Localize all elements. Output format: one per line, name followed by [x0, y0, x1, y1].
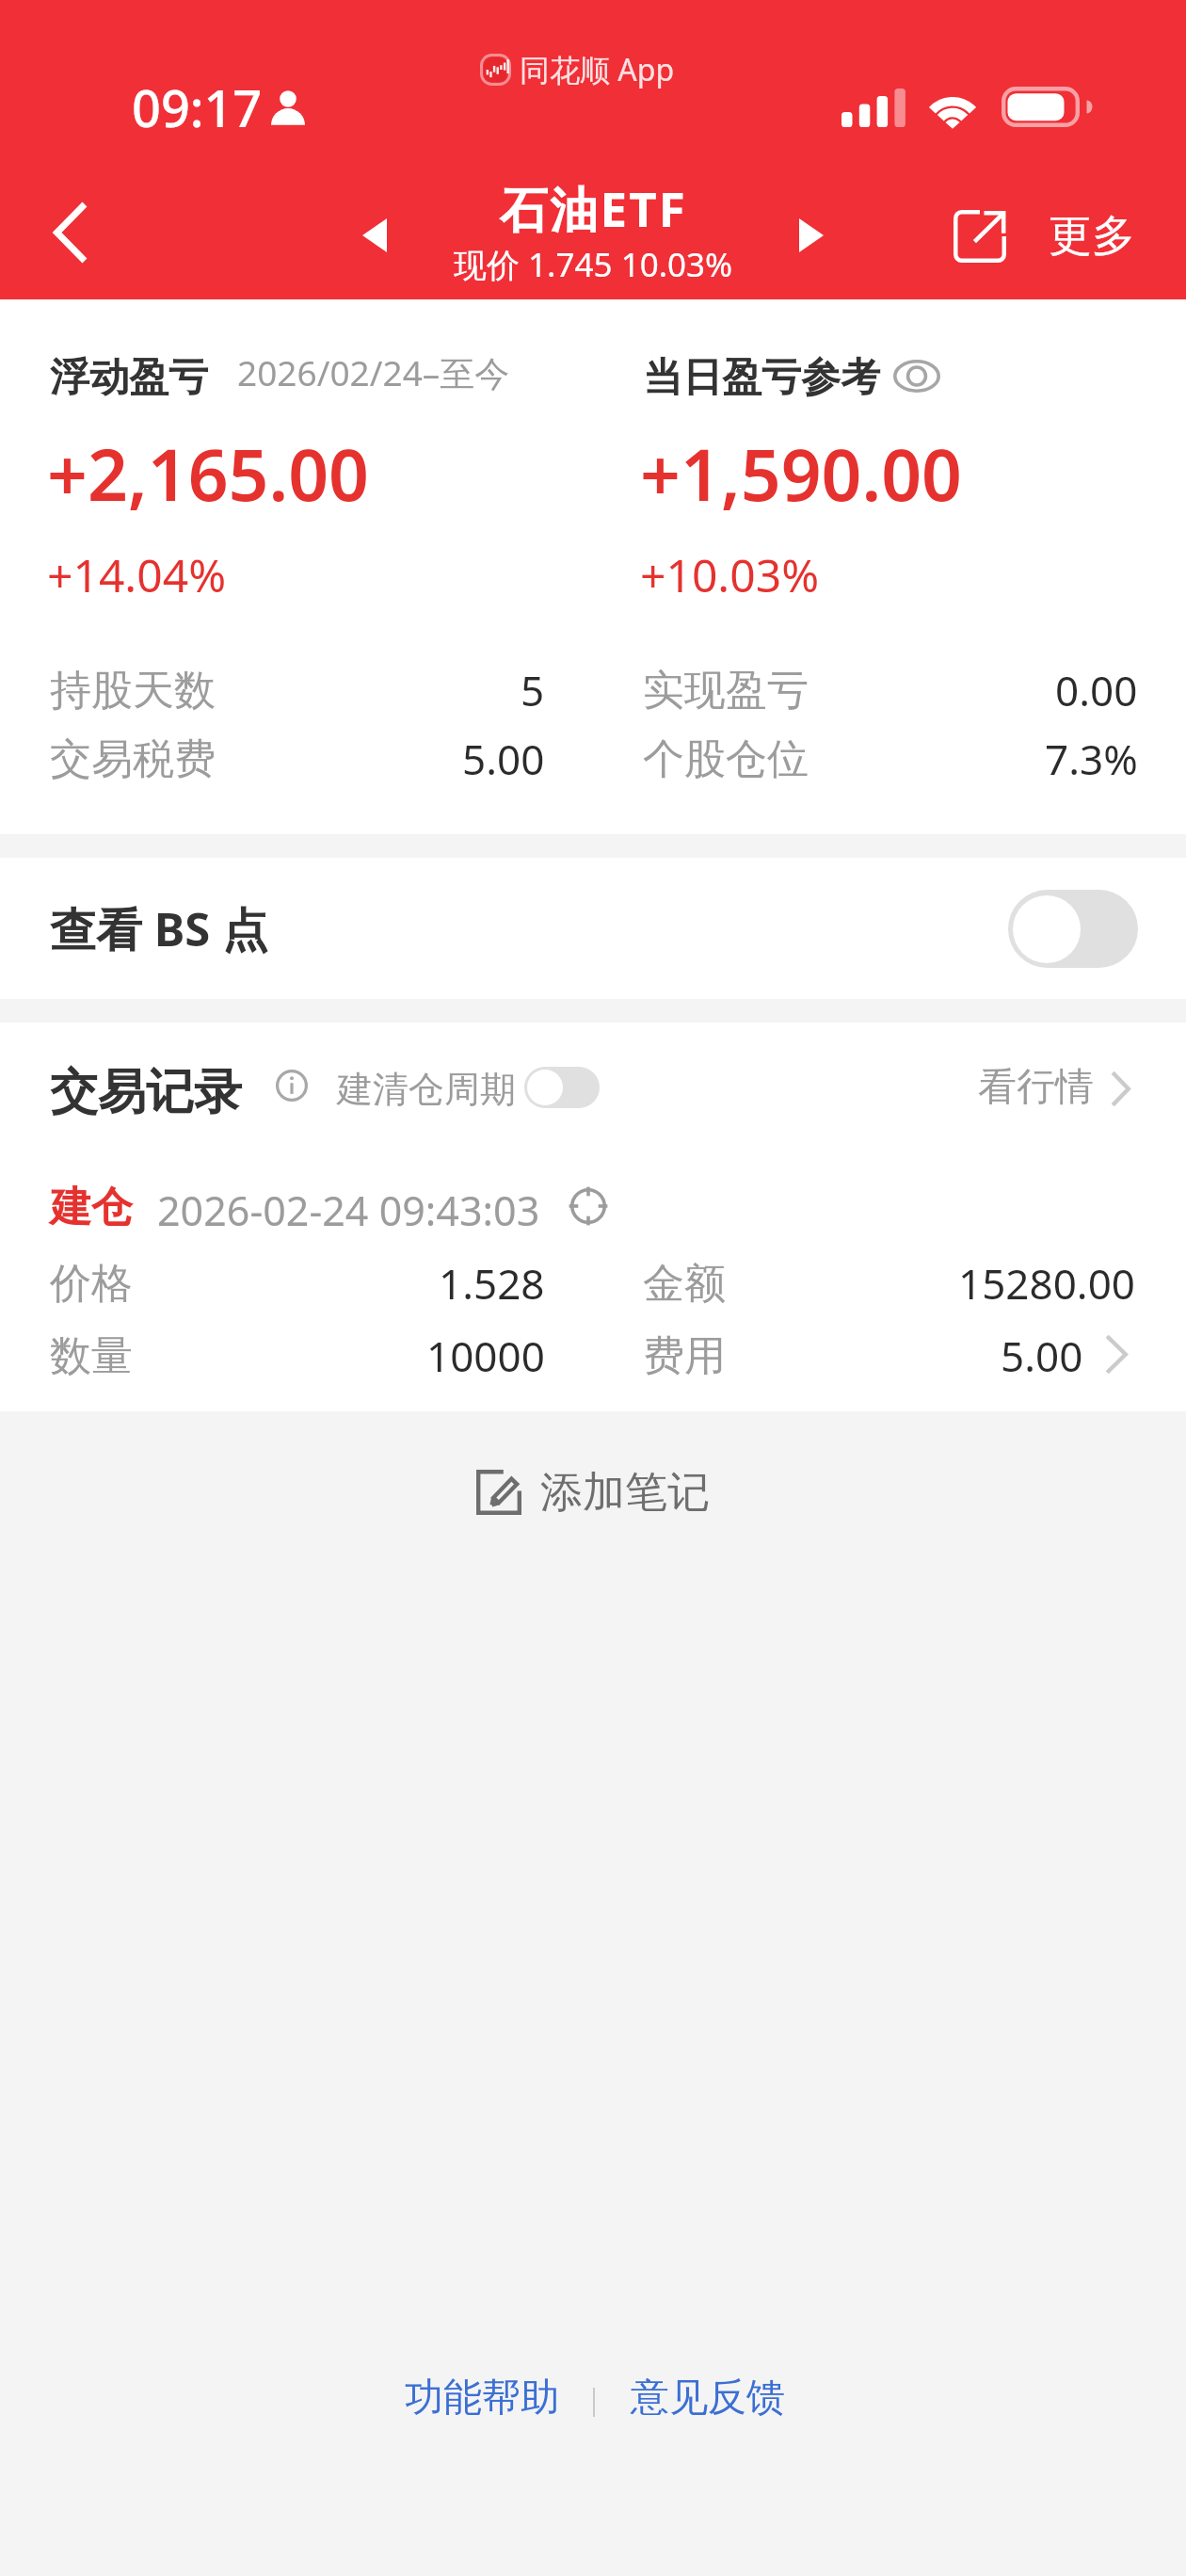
staticText: 当日盈亏参考 — [643, 353, 880, 403]
staticText: 意见反馈 — [631, 2374, 785, 2423]
button[interactable]: 建仓 — [0, 1158, 1186, 1403]
staticText: 5.00 — [1001, 1328, 1083, 1384]
staticText: 实现盈亏 — [643, 665, 809, 716]
staticText: 2026-02-24 09:43:03 — [157, 1183, 540, 1238]
staticText: +14.04% — [47, 544, 227, 605]
button[interactable]: Back — [23, 185, 124, 287]
staticText: 费用 — [643, 1330, 726, 1382]
staticText: 0.00 — [1055, 662, 1138, 718]
staticText: +2,165.00 — [47, 426, 369, 522]
staticText: 现价 1.745 10.03% — [454, 242, 733, 287]
staticText: 数量 — [50, 1330, 133, 1382]
staticText: 个股仓位 — [643, 733, 809, 785]
staticText: +10.03% — [640, 544, 820, 605]
button[interactable]: Share — [930, 186, 1030, 286]
button[interactable]: 更多 — [1034, 196, 1150, 277]
button[interactable]: 看行情 — [978, 1063, 1130, 1112]
staticText: 石油ETF — [500, 175, 687, 241]
staticText: 交易税费 — [50, 733, 216, 785]
staticText: 持股天数 — [50, 665, 216, 716]
staticText: 建清仓周期 — [337, 1067, 516, 1112]
staticText: 15280.00 — [958, 1255, 1135, 1312]
button[interactable]: 查看 BS 点 — [0, 858, 1186, 999]
button[interactable]: Toggle — [524, 1067, 600, 1108]
staticText: 09:17 — [132, 72, 263, 142]
staticText: 10000 — [426, 1328, 545, 1384]
button[interactable]: Next stock — [769, 193, 854, 278]
button[interactable]: Info — [276, 1070, 308, 1102]
staticText: 浮动盈亏 — [50, 353, 208, 403]
staticText: 5.00 — [462, 731, 545, 787]
staticText: 1.528 — [439, 1255, 545, 1312]
staticText: 更多 — [1049, 209, 1135, 264]
staticText: +1,590.00 — [640, 426, 962, 522]
staticText: 7.3% — [1045, 731, 1138, 787]
staticText: 功能帮助 — [405, 2374, 559, 2423]
button[interactable]: 添加笔记 — [0, 1441, 1186, 1544]
button[interactable]: 功能帮助 — [386, 2360, 578, 2436]
staticText: 看行情 — [978, 1063, 1094, 1112]
staticText: 建仓 — [50, 1182, 133, 1233]
staticText: 价格 — [50, 1258, 133, 1310]
button[interactable]: 意见反馈 — [612, 2360, 804, 2436]
button[interactable]: Toggle visibility — [893, 360, 940, 393]
staticText: 同花顺 App — [520, 49, 675, 90]
staticText: 5 — [521, 662, 545, 718]
staticText: 交易记录 — [50, 1062, 242, 1122]
staticText: 金额 — [643, 1258, 726, 1310]
staticText: 查看 BS 点 — [50, 897, 269, 960]
button[interactable]: Previous stock — [332, 193, 417, 278]
staticText: 2026/02/24–至今 — [237, 348, 510, 396]
button[interactable]: Toggle — [1008, 890, 1138, 968]
staticText: 添加笔记 — [540, 1466, 710, 1520]
